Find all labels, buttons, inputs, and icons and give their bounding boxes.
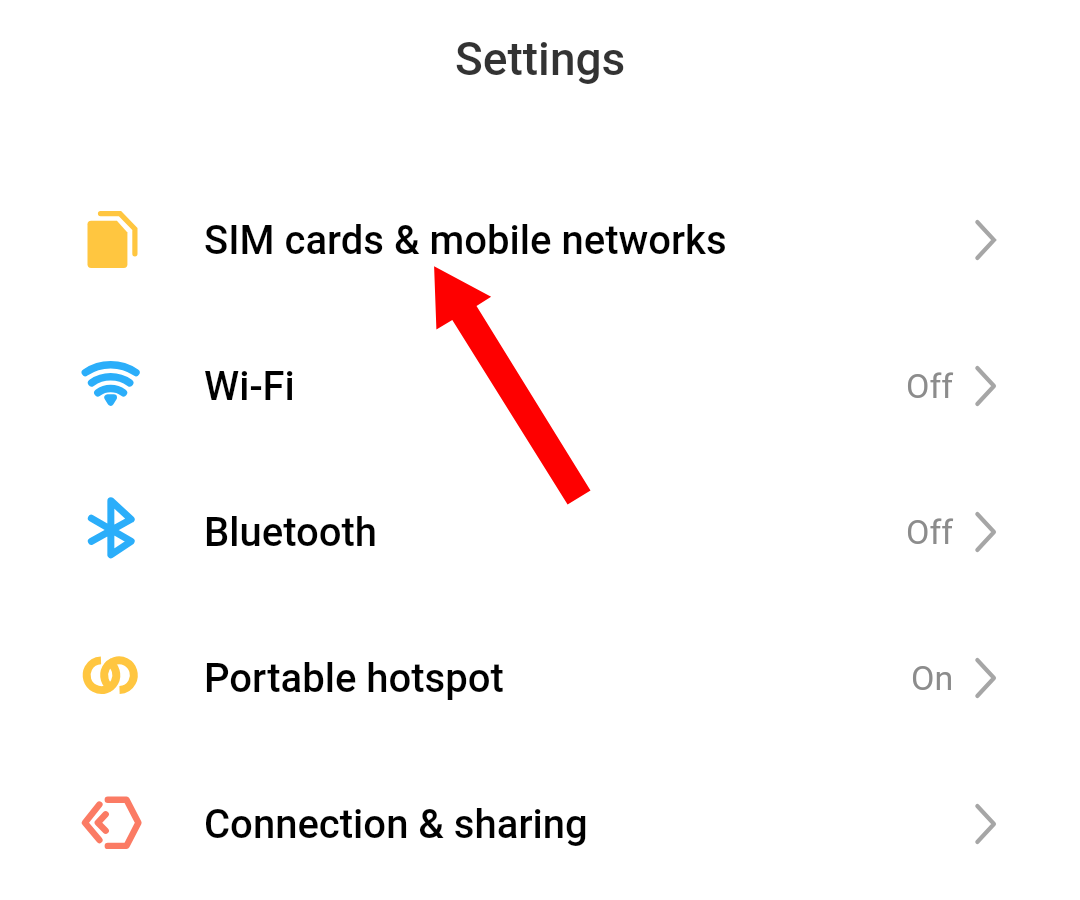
staticText: On [911,658,954,698]
staticText: Off [906,512,954,552]
staticText: Settings [455,32,626,86]
staticText: Off [906,366,954,406]
staticText: Bluetooth [204,509,377,556]
button[interactable]: Connection & sharing [0,751,1080,897]
staticText: SIM cards & mobile networks [204,217,727,264]
other: Open Connection & sharing [975,804,1015,844]
button[interactable]: Bluetooth [0,459,1080,605]
button[interactable]: SIM cards & mobile networks [0,167,1080,313]
staticText: Wi-Fi [204,363,295,410]
button[interactable]: Wi-Fi [0,313,1080,459]
other: Open Portable hotspot [975,658,1015,698]
other: Open Bluetooth [975,512,1015,552]
other: Open Wi-Fi [975,366,1015,406]
staticText: Portable hotspot [204,655,504,702]
staticText: Connection & sharing [204,801,588,848]
button[interactable]: Portable hotspot [0,605,1080,751]
other: Open SIM cards & mobile networks [975,220,1015,260]
